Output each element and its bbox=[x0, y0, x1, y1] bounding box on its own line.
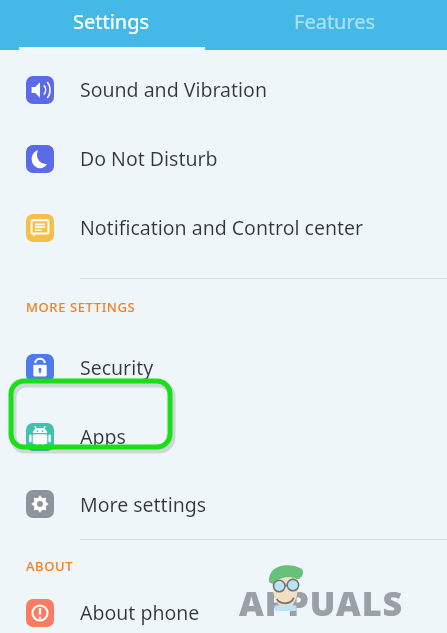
staticText: MORE SETTINGS bbox=[26, 298, 136, 316]
staticText: About phone bbox=[80, 599, 200, 626]
staticText: Apps bbox=[80, 423, 126, 450]
button[interactable]: Do Not Disturb bbox=[0, 124, 447, 193]
button[interactable]: Settings bbox=[0, 0, 223, 50]
staticText: Do Not Disturb bbox=[80, 145, 218, 172]
staticText: Settings bbox=[73, 8, 150, 35]
button[interactable]: About phone bbox=[0, 592, 447, 633]
button[interactable]: Notification and Control center bbox=[0, 193, 447, 262]
staticText: Sound and Vibration bbox=[80, 76, 267, 103]
staticText: More settings bbox=[80, 491, 207, 518]
staticText: Features bbox=[294, 8, 376, 35]
staticText: APPUALS bbox=[239, 580, 404, 626]
staticText: ABOUT bbox=[26, 557, 74, 575]
button[interactable]: More settings bbox=[0, 471, 447, 537]
button[interactable]: Security bbox=[0, 333, 447, 402]
staticText: Notification and Control center bbox=[80, 214, 364, 241]
button[interactable]: Apps bbox=[0, 402, 447, 471]
button[interactable]: Features bbox=[223, 0, 447, 50]
staticText: Security bbox=[80, 354, 154, 381]
button[interactable]: Sound and Vibration bbox=[0, 55, 447, 124]
